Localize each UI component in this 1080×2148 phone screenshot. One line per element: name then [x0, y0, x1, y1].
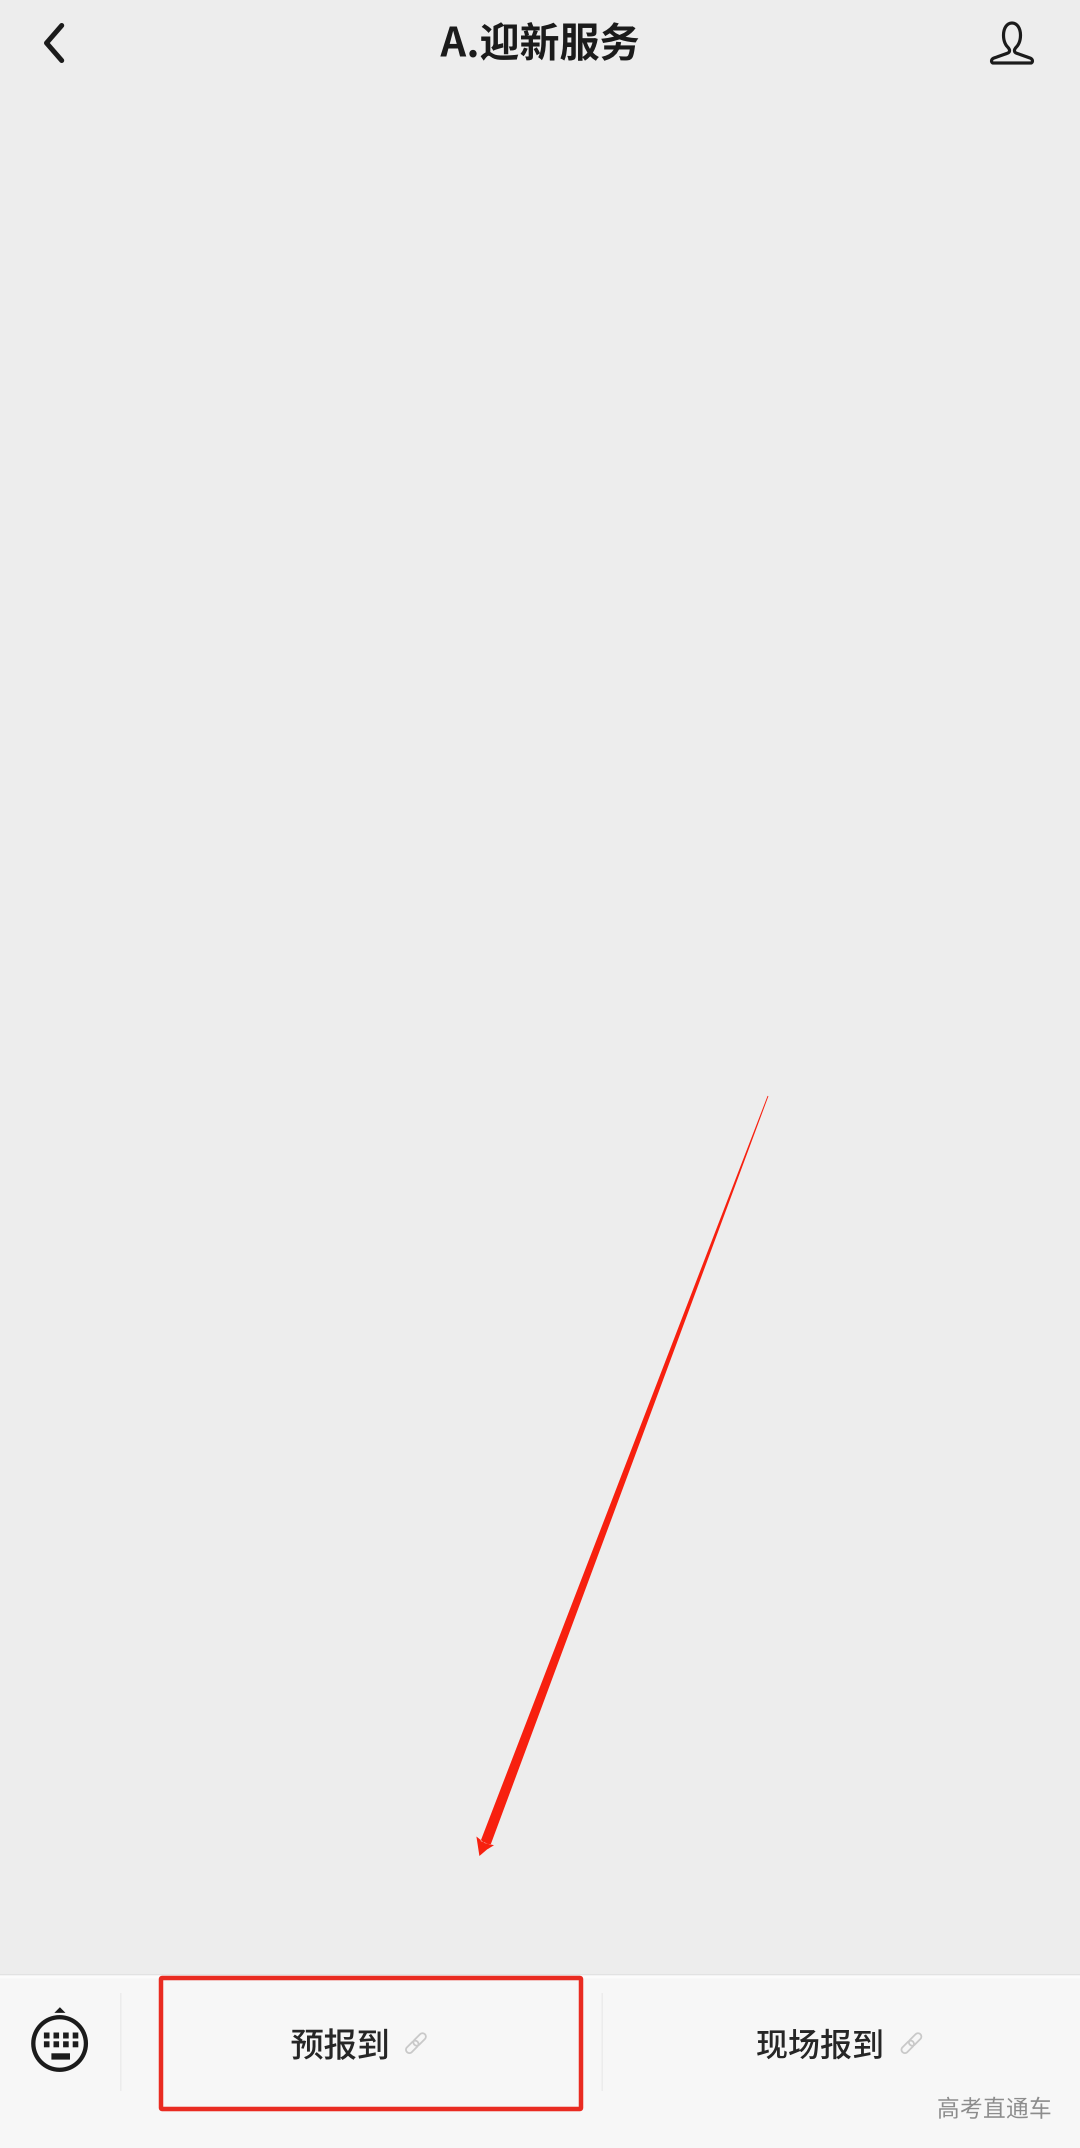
staticText: 高考直通车: [937, 2090, 1052, 2123]
button[interactable]: Back: [10, 0, 98, 86]
staticText: 预报到: [290, 2018, 389, 2066]
button[interactable]: Keyboard: [0, 1974, 120, 2110]
button[interactable]: 现场报到: [603, 1974, 1080, 2110]
staticText: 现场报到: [756, 2019, 884, 2065]
button[interactable]: 预报到: [121, 1974, 601, 2110]
button[interactable]: Profile: [968, 0, 1056, 86]
staticText: A.迎新服务: [440, 10, 639, 68]
